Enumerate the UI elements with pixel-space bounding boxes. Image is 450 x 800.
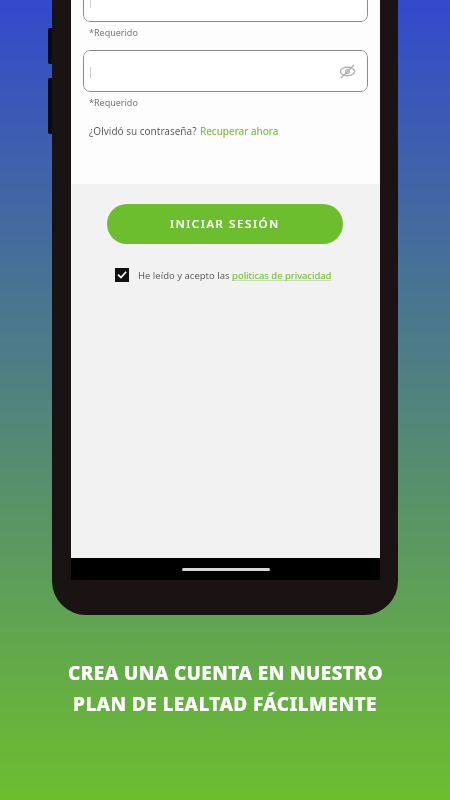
button[interactable] [83, 0, 368, 22]
staticText: He leído y acepto las politicas de priva… [138, 269, 334, 282]
staticText: *Requerido [89, 96, 138, 108]
staticText: Recuperar ahora [200, 124, 279, 138]
staticText: INICIAR SESIÓN [170, 216, 280, 232]
staticText: *Requerido [89, 26, 138, 38]
button[interactable]: He leído y acepto las politicas de priva… [115, 268, 334, 282]
button[interactable]: INICIAR SESIÓN [107, 204, 343, 244]
button[interactable]: Mostrar contraseña [336, 60, 358, 82]
staticText: CREA UNA CUENTA EN NUESTRO [68, 660, 383, 686]
staticText: PLAN DE LEALTAD FÁCILMENTE [73, 691, 377, 717]
button[interactable]: Mostrar contraseña [83, 50, 368, 92]
staticText: ¿Olvidó su contraseña? [89, 124, 200, 138]
button[interactable]: Recuperar ahora [200, 124, 279, 138]
